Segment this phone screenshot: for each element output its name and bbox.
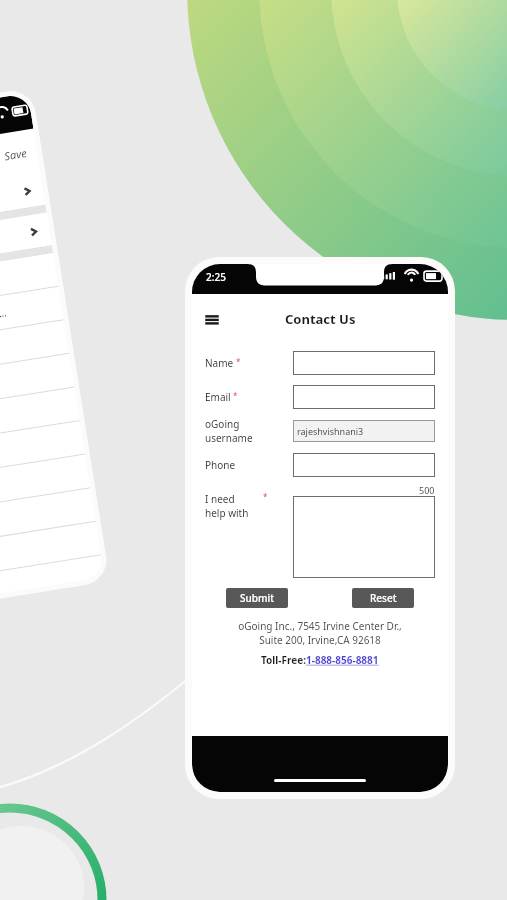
button[interactable] xyxy=(293,385,435,409)
staticText: 2:25 xyxy=(206,270,226,284)
button[interactable]: Submit xyxy=(226,588,288,608)
button[interactable]: rigelnetworks.c... xyxy=(0,287,64,342)
staticText: username xyxy=(205,431,253,445)
staticText: Phone xyxy=(205,458,236,472)
staticText: Contact Us xyxy=(285,310,356,328)
staticText: rajeshvishnani3 xyxy=(297,425,364,437)
staticText: Toll-Free: xyxy=(261,653,306,667)
staticText: I need xyxy=(205,492,235,506)
button[interactable] xyxy=(0,522,101,577)
button[interactable] xyxy=(0,421,85,476)
button[interactable] xyxy=(293,351,435,375)
button[interactable] xyxy=(293,496,435,578)
staticText: Email xyxy=(205,390,231,404)
button[interactable]: works xyxy=(0,253,58,309)
button[interactable]: Menu xyxy=(204,311,220,327)
staticText: oGoing Inc., 7545 Irvine Center Dr., xyxy=(192,619,448,633)
staticText: 500 xyxy=(419,484,435,496)
staticText: oGoing xyxy=(205,417,240,431)
staticText: Suite 200, Irvine,CA 92618 xyxy=(192,633,448,647)
staticText: Reset xyxy=(370,591,397,605)
staticText: help with xyxy=(205,506,249,520)
staticText: rigelnetworks.c... xyxy=(0,305,8,331)
button[interactable] xyxy=(0,213,52,268)
button[interactable]: 1-888-856-8881 xyxy=(306,653,379,667)
button[interactable] xyxy=(0,555,104,599)
staticText: Name xyxy=(205,356,234,370)
staticText: Submit xyxy=(240,591,274,605)
button[interactable] xyxy=(293,453,435,477)
button[interactable]: Profile Image xyxy=(0,172,46,228)
button[interactable] xyxy=(0,387,80,443)
button[interactable]: dia xyxy=(0,354,74,409)
button[interactable]: ndia xyxy=(0,488,96,544)
staticText: * xyxy=(231,390,238,401)
staticText: Save xyxy=(3,145,28,163)
staticText: * xyxy=(263,491,268,502)
staticText: * xyxy=(234,356,241,367)
button[interactable]: erminds.com xyxy=(0,320,69,376)
button[interactable] xyxy=(0,455,90,510)
button[interactable]: Reset xyxy=(352,588,414,608)
